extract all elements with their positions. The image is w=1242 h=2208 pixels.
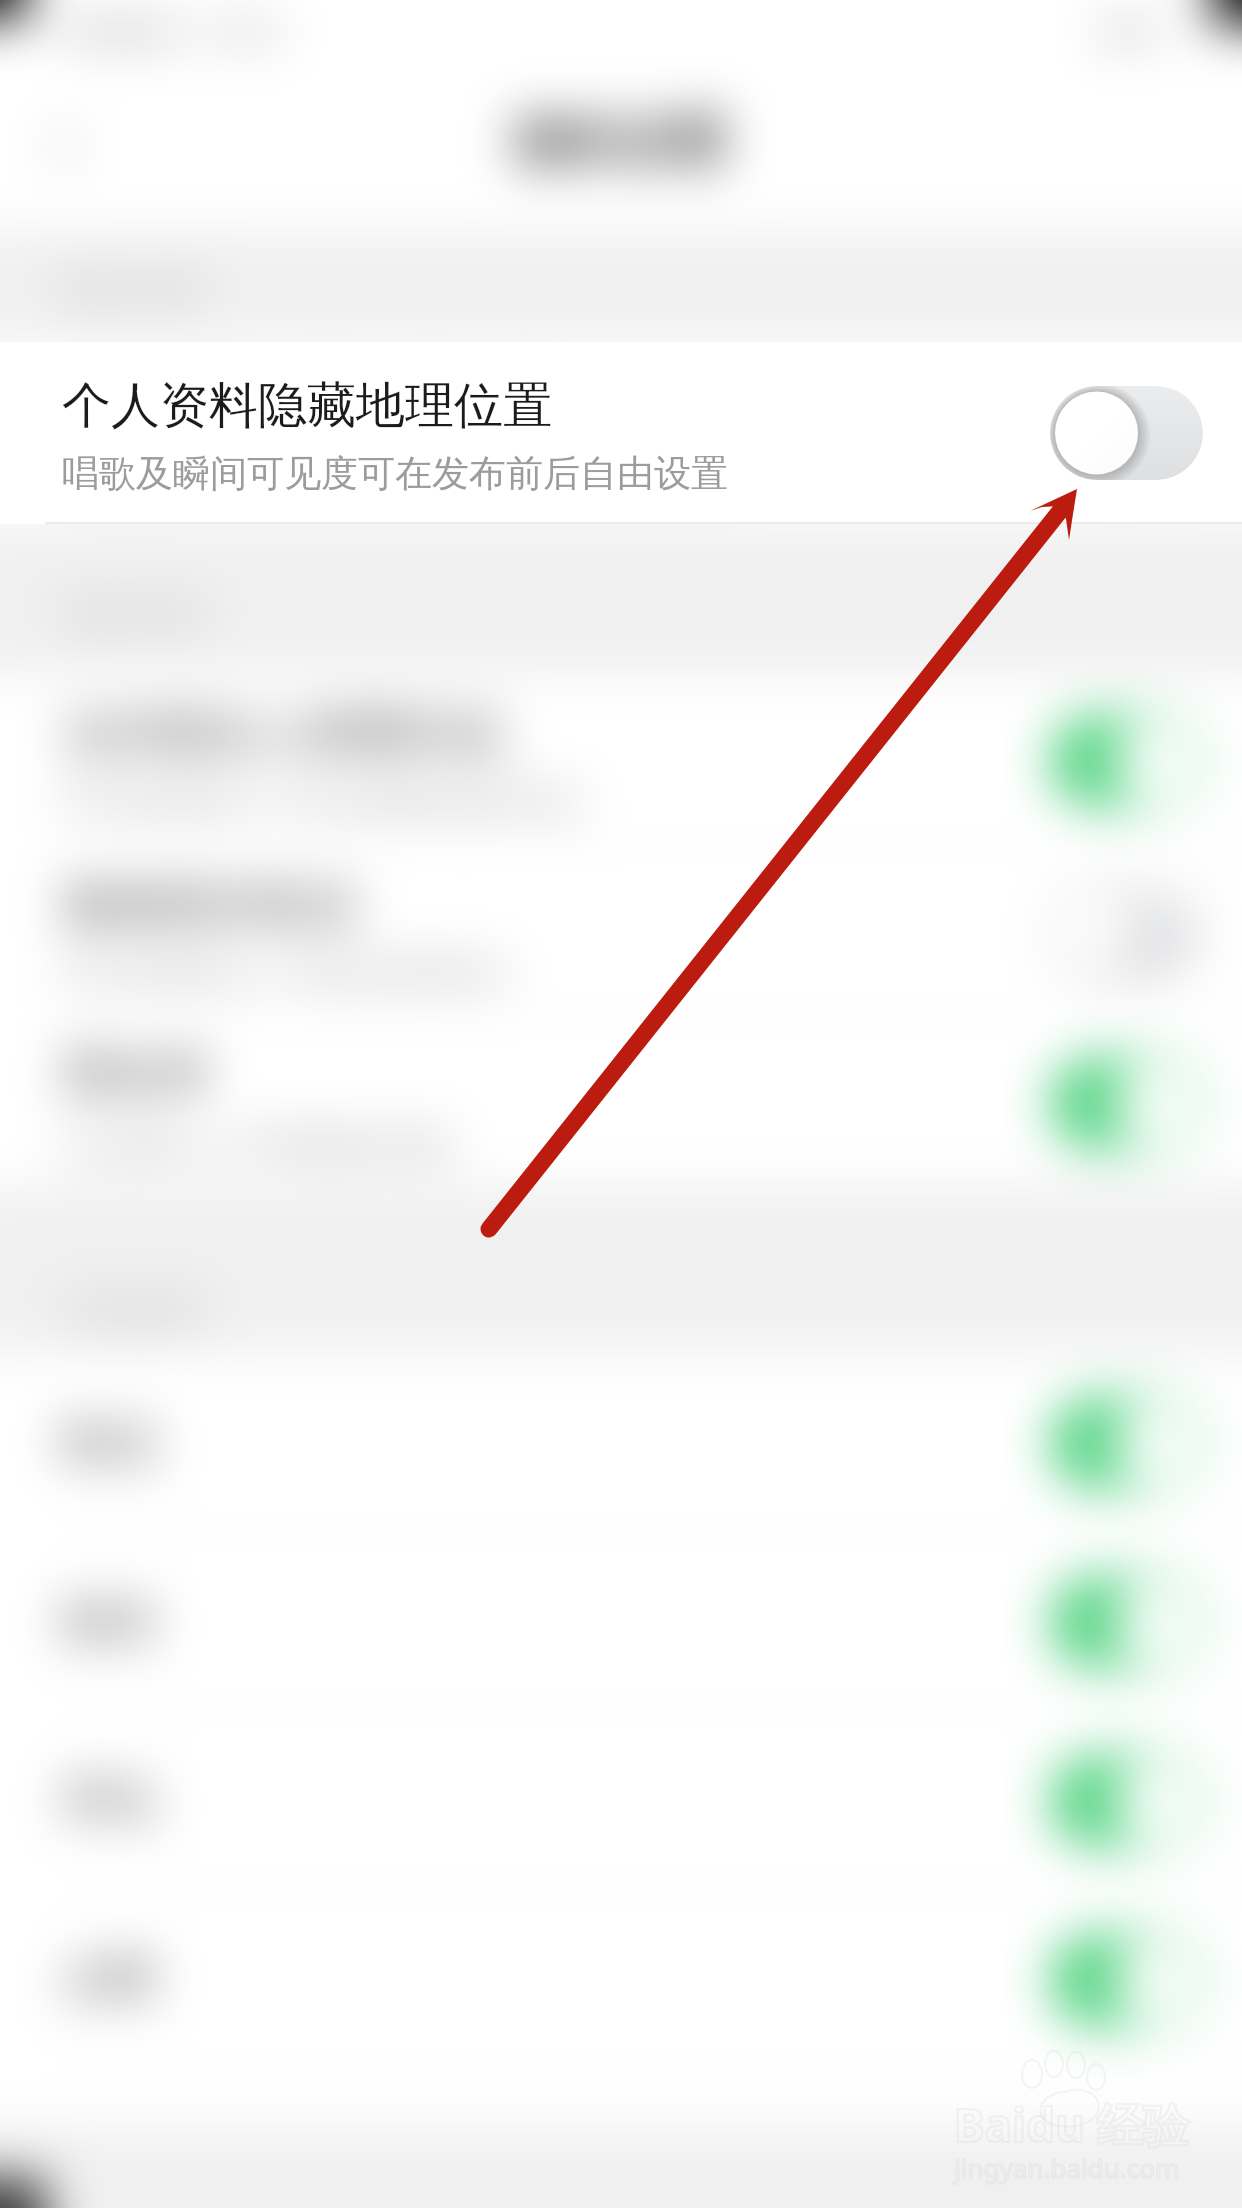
- button[interactable]: 允许陌生人查看作品: [0, 675, 1242, 846]
- staticText: 开启后陌生人可给你发私信: [62, 949, 506, 996]
- button[interactable]: Toggle off: [1050, 386, 1203, 480]
- staticText: 开启后陌生人可以查看你的作品: [62, 778, 580, 825]
- staticText: 评论: [62, 1771, 1050, 1830]
- button[interactable]: 点赞: [0, 1890, 1242, 2069]
- staticText: jingyan.baidu.com: [954, 2150, 1180, 2185]
- button[interactable]: 个人资料隐藏地理位置: [0, 342, 1242, 524]
- staticText: 私信: [62, 1413, 1050, 1472]
- button[interactable]: Toggle off: [1050, 386, 1203, 480]
- staticText: 个人资料隐藏地理位置: [62, 375, 552, 437]
- staticText: 黑名单: [62, 1043, 209, 1105]
- button[interactable]: 粉丝: [0, 1532, 1242, 1711]
- button[interactable]: Toggle on: [1050, 1575, 1203, 1669]
- button[interactable]: Toggle off: [1050, 885, 1203, 979]
- button[interactable]: 评论: [0, 1711, 1242, 1890]
- staticText: 个人资料隐藏地理位置: [62, 375, 552, 437]
- staticText: 唱歌及瞬间可见度可在发布前后自由设置: [62, 450, 728, 497]
- staticText: 中国移动 10:24: [54, 9, 281, 53]
- staticText: 点赞: [62, 1950, 1050, 2009]
- button[interactable]: 私信: [0, 1353, 1242, 1532]
- button[interactable]: Toggle on: [1050, 714, 1203, 808]
- button[interactable]: Toggle on: [1050, 1933, 1203, 2027]
- staticText: 接收陌生私信: [62, 874, 356, 936]
- staticText: 允许陌生人查看作品: [62, 703, 503, 765]
- button[interactable]: Toggle on: [1050, 1056, 1203, 1150]
- staticText: 唱歌及瞬间可见度可在发布前后自由设置: [62, 450, 728, 497]
- staticText: 隐私设置: [515, 109, 727, 176]
- button[interactable]: Toggle on: [1050, 1396, 1203, 1490]
- button[interactable]: 个人资料隐藏地理位置: [0, 342, 1242, 524]
- button[interactable]: 接收陌生私信: [0, 846, 1242, 1017]
- staticText: Baidu 经验: [954, 2093, 1189, 2156]
- staticText: 粉丝: [62, 1592, 1050, 1651]
- button[interactable]: 黑名单: [0, 1017, 1242, 1188]
- button[interactable]: Toggle on: [1050, 1754, 1203, 1848]
